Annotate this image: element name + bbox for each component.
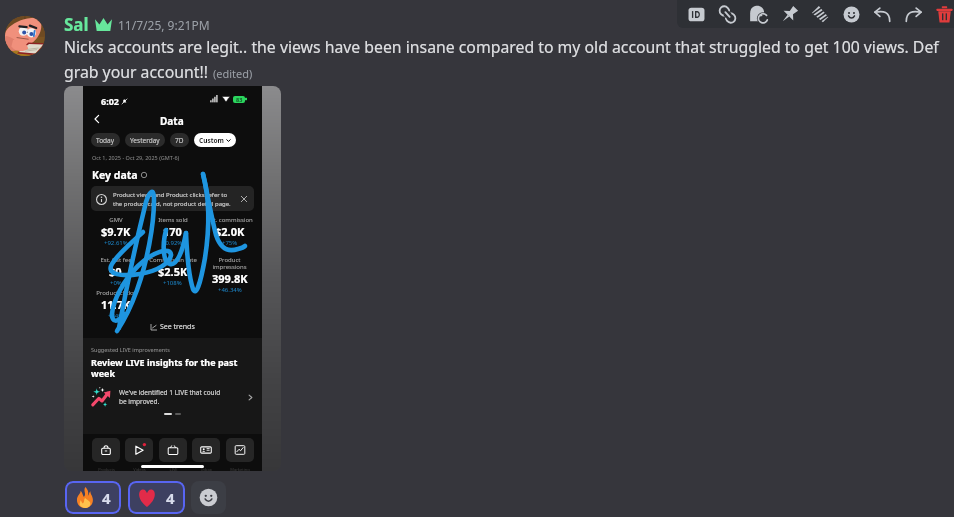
staticText: (edited) bbox=[213, 66, 253, 81]
button[interactable]: Shop bbox=[92, 438, 120, 462]
staticText: +92.61% bbox=[104, 239, 128, 247]
staticText: Commission rate bbox=[149, 256, 197, 264]
button[interactable]: Image attachment bbox=[64, 86, 281, 471]
button[interactable]: Custom bbox=[194, 133, 236, 147]
staticText: $2.0K bbox=[215, 224, 245, 239]
button[interactable]: Sal avatar bbox=[5, 16, 45, 56]
button[interactable]: 4 bbox=[128, 481, 185, 514]
staticText: See trends bbox=[160, 322, 195, 332]
staticText: GMV bbox=[109, 216, 123, 224]
staticText: +108% bbox=[163, 279, 182, 287]
button[interactable]: Reply bbox=[867, 0, 898, 28]
button[interactable]: Back bbox=[92, 114, 102, 124]
button[interactable]: Analytics bbox=[226, 438, 254, 462]
button[interactable]: Suggested LIVE improvements bbox=[83, 338, 262, 434]
staticText: Inbox bbox=[201, 467, 212, 471]
staticText: 399.8K bbox=[212, 271, 248, 286]
staticText: 6:02 bbox=[101, 95, 119, 107]
button[interactable]: 4 bbox=[65, 481, 121, 514]
button[interactable]: Forward bbox=[898, 0, 929, 28]
staticText: Suggested LIVE improvements bbox=[91, 346, 170, 353]
staticText: Nicks accounts are legit.. the views hav… bbox=[64, 36, 954, 58]
staticText: +84% bbox=[108, 312, 124, 320]
button[interactable]: Add reaction bbox=[191, 481, 226, 514]
staticText: Today bbox=[96, 136, 115, 145]
staticText: 4 bbox=[102, 488, 111, 508]
staticText: Items sold bbox=[158, 216, 188, 224]
button[interactable]: Copy ID bbox=[681, 0, 712, 28]
staticText: Products bbox=[98, 467, 115, 471]
staticText: +75% bbox=[222, 239, 238, 247]
button[interactable]: 7D bbox=[170, 133, 189, 147]
staticText: Data bbox=[160, 114, 184, 128]
button[interactable]: Today bbox=[91, 133, 120, 147]
staticText: Key data bbox=[92, 168, 138, 182]
button[interactable]: LIVE bbox=[159, 438, 187, 462]
button[interactable]: Videos bbox=[125, 438, 153, 462]
staticText: Product clicks bbox=[96, 289, 135, 297]
staticText: Oct 1, 2025 - Oct 29, 2025 (GMT-6) bbox=[92, 154, 180, 161]
staticText: We've identified 1 LIVE that could be im… bbox=[119, 388, 224, 406]
button[interactable]: Mark unread bbox=[743, 0, 774, 28]
button[interactable]: Delete bbox=[929, 0, 954, 28]
staticText: grab your account!! bbox=[64, 61, 208, 83]
button[interactable]: Inbox bbox=[192, 438, 220, 462]
staticText: +46.34% bbox=[218, 286, 242, 294]
staticText: Review LIVE insights for the past week bbox=[91, 356, 241, 379]
staticText: LIVE bbox=[169, 467, 178, 471]
staticText: Videos bbox=[133, 467, 146, 471]
staticText: Product views and Product clicks refer t… bbox=[113, 191, 232, 207]
staticText: 11.7K bbox=[101, 297, 131, 312]
staticText: Est. flat fee bbox=[100, 256, 132, 264]
staticText: +0.92% bbox=[162, 239, 183, 247]
button[interactable]: Sal bbox=[64, 13, 89, 36]
staticText: Marketing bbox=[230, 467, 250, 471]
staticText: $2.5K bbox=[158, 264, 188, 279]
staticText: 4 bbox=[166, 488, 175, 508]
button[interactable]: Yesterday bbox=[125, 133, 165, 147]
button[interactable]: Highlight bbox=[805, 0, 836, 28]
staticText: 11/7/25, 9:21PM bbox=[118, 17, 210, 33]
staticText: 170 bbox=[163, 224, 182, 239]
staticText: $9.7K bbox=[101, 224, 131, 239]
staticText: 83 bbox=[236, 96, 243, 103]
staticText: $0 bbox=[109, 264, 122, 279]
staticText: Yesterday bbox=[130, 136, 160, 145]
button[interactable]: Add reaction bbox=[836, 0, 867, 28]
staticText: Custom bbox=[199, 136, 224, 145]
staticText: +0% bbox=[110, 279, 122, 287]
button[interactable]: Copy link bbox=[712, 0, 743, 28]
staticText: 7D bbox=[175, 136, 184, 145]
staticText: Est. commission bbox=[207, 216, 253, 224]
staticText: Product impressions bbox=[212, 256, 247, 271]
button[interactable]: Pin message bbox=[774, 0, 805, 28]
